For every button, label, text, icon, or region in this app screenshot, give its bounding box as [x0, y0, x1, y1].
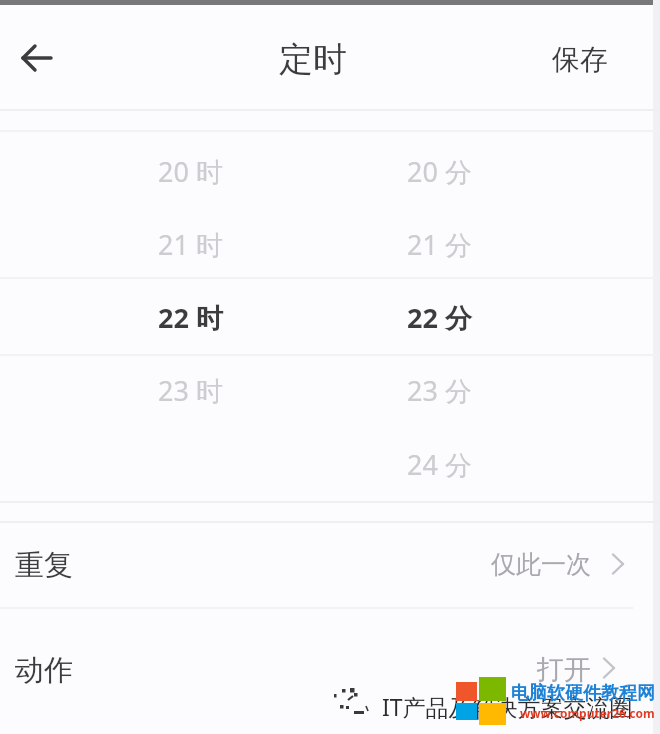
staticText: 仅此一次	[491, 549, 591, 580]
button[interactable]: 21 分	[319, 211, 559, 277]
staticText: 21 时	[158, 226, 223, 263]
staticText: 保存	[552, 42, 608, 77]
button[interactable]: 21 时	[70, 211, 310, 277]
staticText: www.computer26.com	[520, 705, 655, 721]
button[interactable]: 20 时	[70, 138, 310, 204]
staticText: 动作	[15, 652, 73, 689]
staticText: 打开	[537, 653, 591, 687]
staticText: 电脑软硬件教程网	[511, 682, 655, 705]
button[interactable]: 24 分	[319, 431, 559, 497]
button[interactable]: 23 分	[319, 357, 559, 423]
staticText: 22 时	[158, 299, 223, 336]
staticText: 21 分	[407, 226, 472, 263]
button[interactable]: 22 时	[70, 284, 310, 350]
button[interactable]: 动作	[0, 609, 660, 734]
staticText: 24 分	[407, 446, 472, 483]
staticText: 20 分	[407, 153, 472, 190]
staticText: 22 分	[407, 299, 472, 336]
button[interactable]: 23 时	[70, 357, 310, 423]
staticText: 23 时	[158, 372, 223, 409]
button[interactable]: 22 分	[319, 284, 559, 350]
staticText: 定时	[279, 38, 347, 81]
staticText: 20 时	[158, 153, 223, 190]
staticText: 23 分	[407, 372, 472, 409]
button[interactable]: 保存	[520, 21, 640, 97]
staticText: IT产品及解决方案交流圈	[382, 691, 633, 722]
staticText: 重复	[15, 547, 73, 584]
button[interactable]: Back	[4, 25, 70, 91]
button[interactable]: 20 分	[319, 138, 559, 204]
button[interactable]: 重复	[0, 529, 660, 608]
